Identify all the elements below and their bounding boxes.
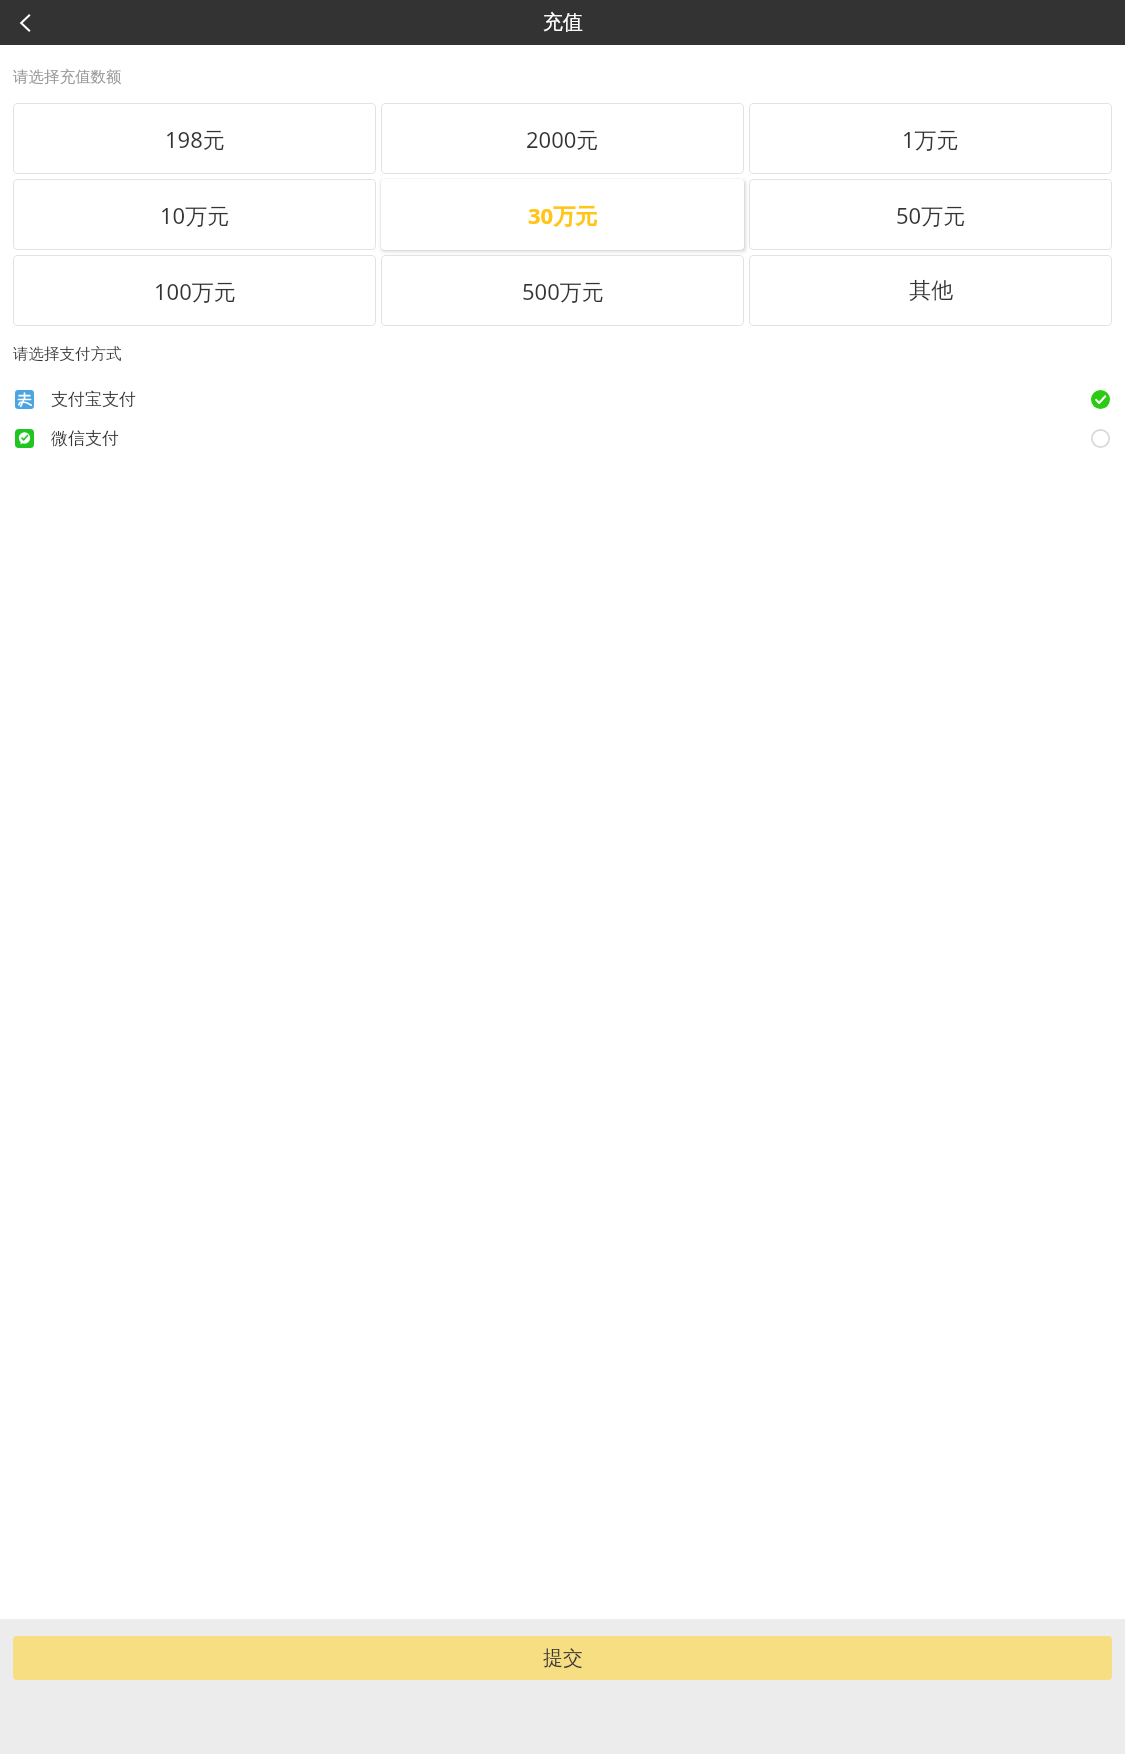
button[interactable]: 50万元 — [749, 179, 1112, 250]
staticText: 50万元 — [896, 200, 966, 230]
staticText: 1万元 — [902, 124, 959, 154]
staticText: 10万元 — [160, 200, 230, 230]
staticText: 2000元 — [526, 124, 599, 154]
button[interactable]: 30万元 — [381, 179, 744, 250]
staticText: 微信支付 — [51, 428, 119, 449]
button[interactable]: 100万元 — [13, 255, 376, 326]
staticText: 提交 — [543, 1646, 583, 1671]
staticText: 其他 — [909, 277, 953, 305]
button[interactable]: 微信支付 — [0, 419, 1125, 458]
staticText: 支付宝支付 — [51, 389, 136, 410]
button[interactable]: 198元 — [13, 103, 376, 174]
staticText: 198元 — [165, 124, 225, 154]
button[interactable]: 提交 — [13, 1636, 1112, 1680]
button[interactable]: 500万元 — [381, 255, 744, 326]
staticText: 30万元 — [528, 200, 598, 230]
button[interactable]: 2000元 — [381, 103, 744, 174]
staticText: 100万元 — [154, 276, 236, 306]
button[interactable]: 其他 — [749, 255, 1112, 326]
staticText: 请选择充值数额 — [13, 67, 122, 87]
staticText: 请选择支付方式 — [13, 344, 122, 364]
button[interactable]: 支付宝支付 — [0, 380, 1125, 419]
button[interactable]: 1万元 — [749, 103, 1112, 174]
button[interactable]: Back — [0, 0, 52, 45]
staticText: 500万元 — [522, 276, 604, 306]
button[interactable]: 10万元 — [13, 179, 376, 250]
staticText: 充值 — [543, 10, 583, 35]
